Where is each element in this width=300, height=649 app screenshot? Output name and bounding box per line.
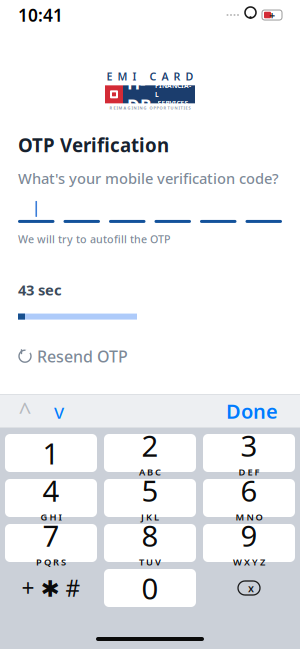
staticText: HDB (127, 71, 152, 117)
button[interactable]: 9 (203, 524, 295, 562)
staticText: E (106, 69, 112, 83)
staticText: x (248, 581, 254, 595)
staticText: FINANCIAL (155, 81, 191, 99)
button[interactable]: 8 (104, 524, 196, 562)
staticText: 5 (141, 471, 158, 510)
button[interactable]: Next field (42, 396, 76, 426)
staticText: M (117, 69, 127, 83)
staticText: SERVICES (157, 99, 188, 108)
staticText: I (132, 69, 136, 83)
staticText: D (185, 69, 193, 83)
staticText: W X Y Z (233, 556, 265, 568)
staticText: A (161, 69, 168, 83)
staticText: 8 (141, 516, 158, 555)
staticText: C (149, 69, 156, 83)
staticText: T U V (139, 556, 161, 568)
staticText: 3 (240, 426, 257, 465)
staticText: 43 sec (18, 280, 62, 300)
staticText: Done (226, 398, 278, 424)
staticText: What's your mobile verification code? (18, 168, 279, 188)
button[interactable]: 5 (104, 479, 196, 517)
button[interactable]: 7 (5, 524, 97, 562)
staticText: v (54, 398, 64, 424)
staticText: G H I (40, 511, 61, 523)
button[interactable]: Resend OTP (18, 342, 128, 371)
staticText: + ✱ # (21, 573, 80, 603)
button[interactable]: 2 (104, 434, 196, 472)
staticText: M N O (235, 511, 262, 523)
button[interactable]: Previous field (8, 396, 42, 426)
staticText: J K L (141, 511, 159, 523)
staticText: 2 (141, 426, 158, 465)
staticText: + (269, 8, 275, 22)
button[interactable]: 6 (203, 479, 295, 517)
staticText: OTP Verification (18, 133, 169, 157)
staticText: ^ (18, 396, 31, 426)
button[interactable]: 4 (5, 479, 97, 517)
button[interactable]: 0 (104, 569, 196, 607)
button[interactable]: Done (212, 396, 292, 426)
staticText: 1 (42, 433, 59, 472)
staticText: 9 (240, 516, 257, 555)
staticText: We will try to autofill the OTP (18, 232, 171, 246)
button[interactable]: Delete (203, 569, 295, 607)
button[interactable]: 1 (5, 434, 97, 472)
staticText: Resend OTP (37, 346, 128, 367)
button[interactable]: Symbols (5, 569, 97, 607)
staticText: R (173, 69, 180, 83)
staticText: 0 (141, 568, 158, 607)
button[interactable]: 3 (203, 434, 295, 472)
staticText: 4 (42, 471, 59, 510)
staticText: 7 (42, 516, 59, 555)
staticText: 10:41 (18, 3, 63, 26)
staticText: A B C (139, 466, 161, 478)
staticText: D E F (238, 466, 259, 478)
staticText: P Q R S (36, 556, 66, 568)
staticText: R E I M A G I N I N G O P P O R T U N I … (109, 105, 190, 111)
staticText: 6 (240, 471, 257, 510)
